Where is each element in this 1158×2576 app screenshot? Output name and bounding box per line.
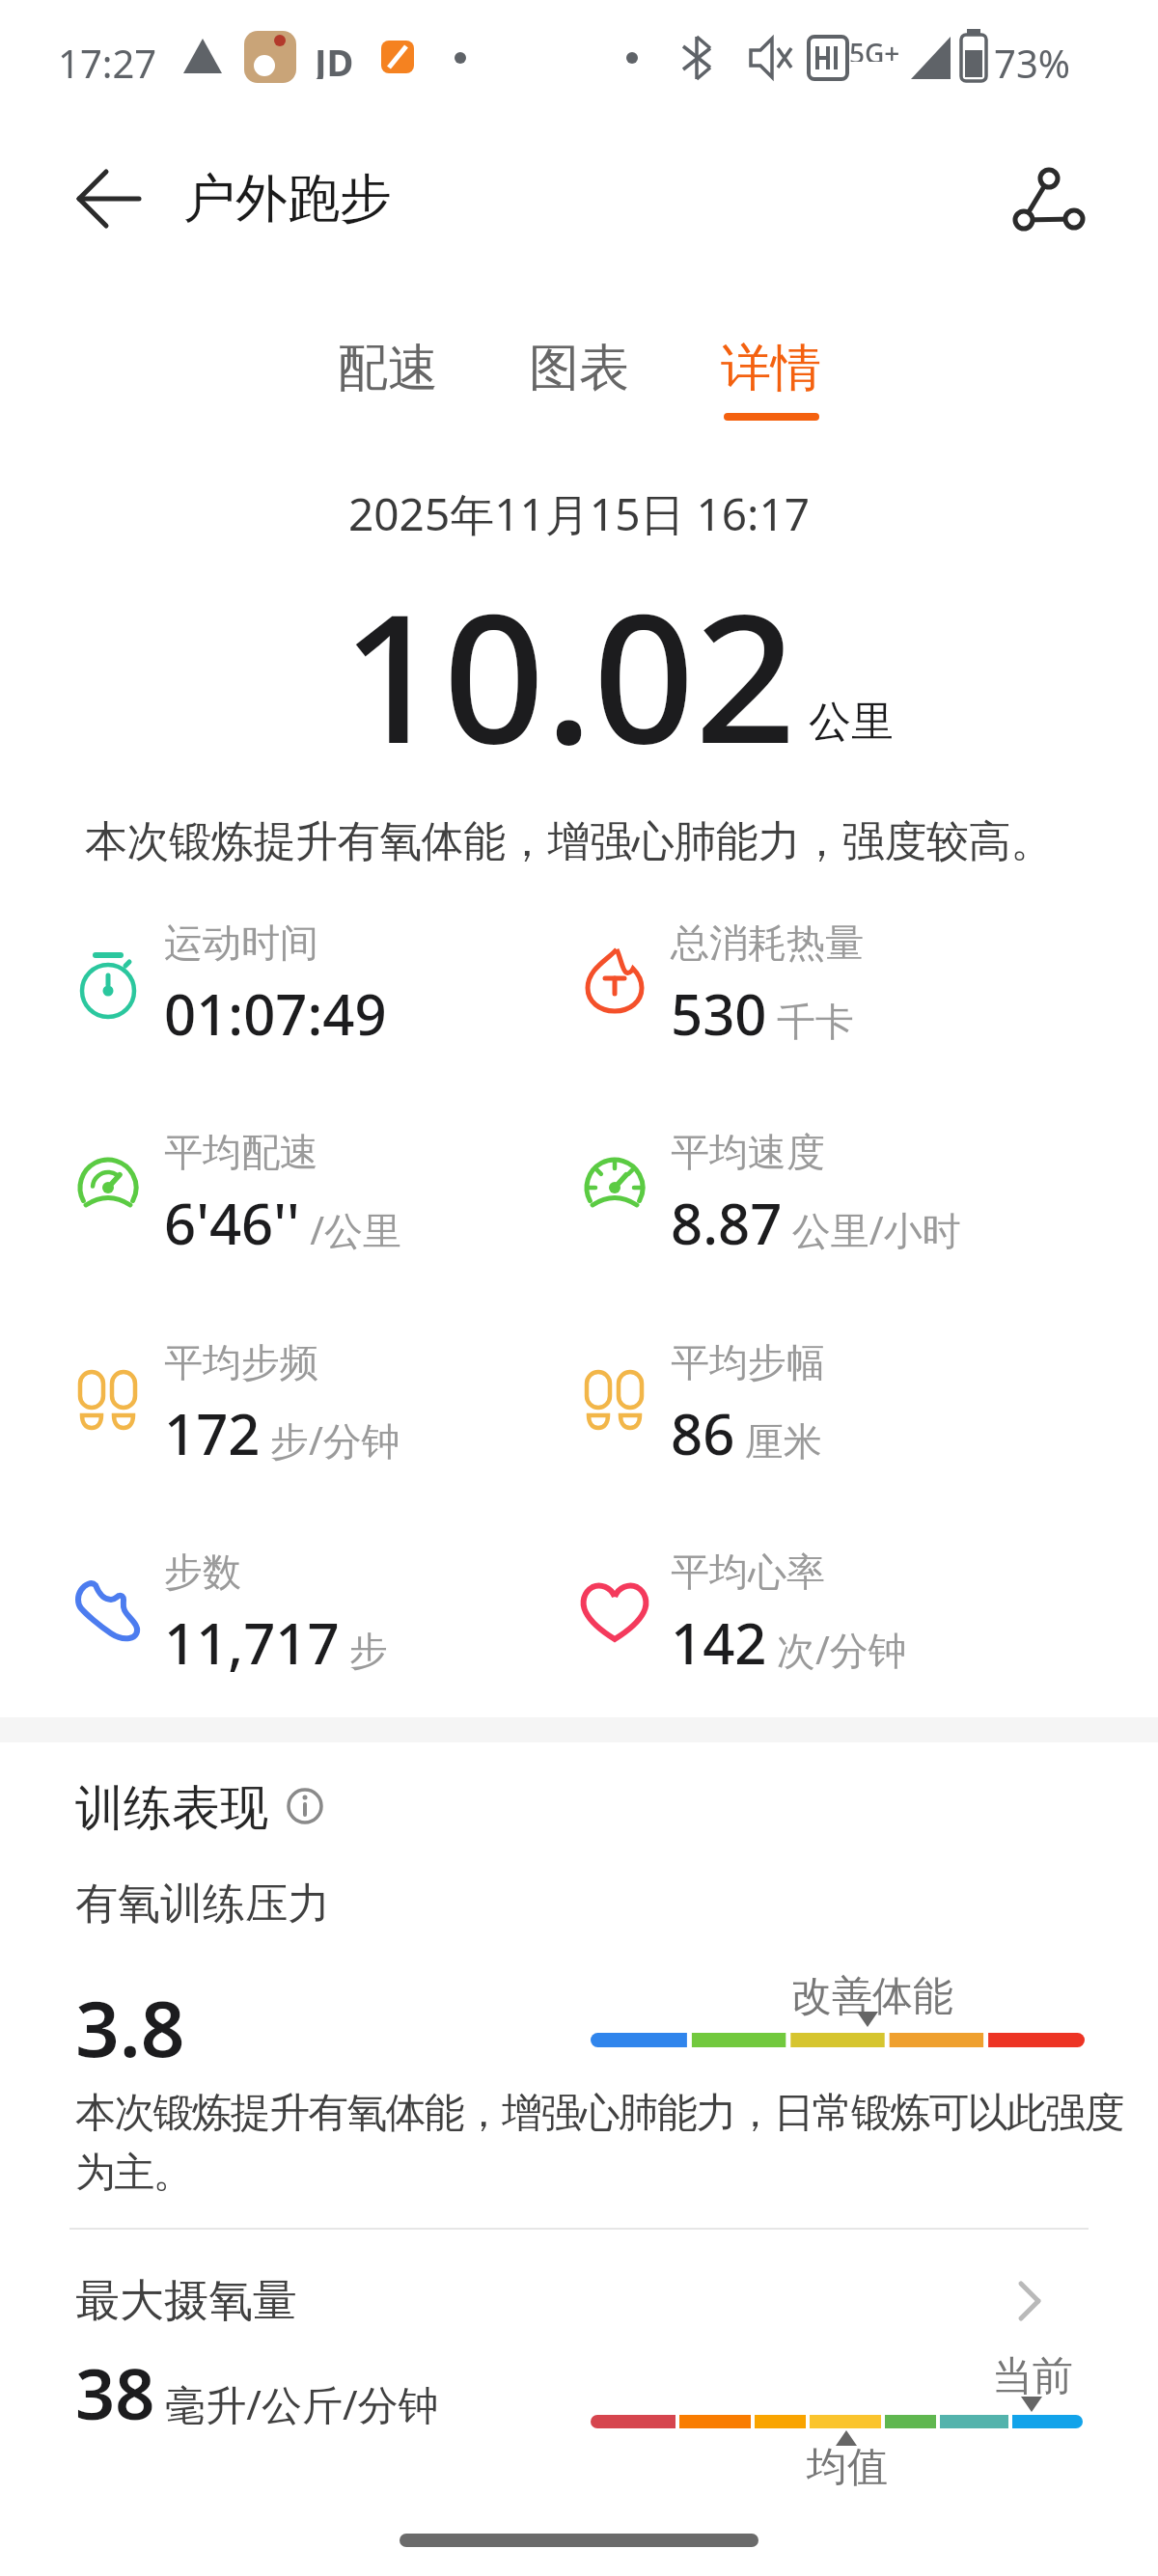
staticText: 本次锻炼提升有氧体能，增强心肺能力，强度较高。 [85, 815, 1053, 868]
staticText: JD [315, 37, 354, 79]
staticText: 训练表现 [75, 1778, 268, 1839]
staticText: 平均步幅 [671, 1338, 825, 1386]
staticText: 6'46'' /公里 [164, 1185, 402, 1261]
staticText: 01:07:49 [164, 975, 387, 1052]
staticText: 172 步/分钟 [164, 1395, 400, 1471]
staticText: 运动时间 [164, 918, 318, 967]
staticText: 11,717 步 [164, 1604, 389, 1681]
staticText: 配速 [338, 337, 438, 400]
staticText: 均值 [807, 2442, 888, 2493]
staticText: 平均速度 [671, 1128, 825, 1176]
staticText: 平均心率 [671, 1548, 825, 1596]
staticText: 图表 [529, 337, 629, 400]
button[interactable]: 配速 [311, 318, 465, 419]
staticText: 本次锻炼提升有氧体能，增强心肺能力，日常锻炼可以此强度 [75, 2088, 1123, 2139]
staticText: 详情 [721, 337, 821, 400]
staticText: 户外跑步 [183, 166, 392, 232]
button[interactable]: 详情 [694, 318, 848, 419]
staticText: 改善体能 [791, 1971, 953, 2022]
staticText: 2025年11月15日 16:17 [348, 483, 811, 544]
staticText: 38 毫升/公斤/分钟 [75, 2345, 439, 2440]
staticText: 73% [994, 37, 1070, 79]
staticText: 步数 [164, 1548, 241, 1596]
staticText: 平均配速 [164, 1128, 318, 1176]
button[interactable]: 图表 [502, 318, 656, 419]
staticText: 8.87 公里/小时 [671, 1185, 961, 1261]
staticText: 总消耗热量 [671, 918, 864, 967]
staticText: 为主。 [75, 2148, 192, 2199]
staticText: 10.02 [342, 553, 797, 795]
staticText: 平均步频 [164, 1338, 318, 1386]
button[interactable] [58, 2258, 1100, 2344]
staticText: 17:27 [58, 37, 157, 79]
button[interactable] [276, 1777, 334, 1835]
staticText: 3.8 [75, 1974, 185, 2079]
staticText: 5G+ [849, 35, 900, 62]
button[interactable] [64, 154, 152, 243]
staticText: 有氧训练压力 [75, 1877, 330, 1931]
staticText: 最大摄氧量 [75, 2273, 297, 2329]
staticText: 公里 [809, 696, 894, 749]
staticText: 当前 [992, 2351, 1073, 2402]
button[interactable] [1004, 154, 1092, 243]
staticText: 530 千卡 [671, 975, 854, 1052]
staticText: 142 次/分钟 [671, 1604, 907, 1681]
staticText: 86 厘米 [671, 1395, 822, 1471]
